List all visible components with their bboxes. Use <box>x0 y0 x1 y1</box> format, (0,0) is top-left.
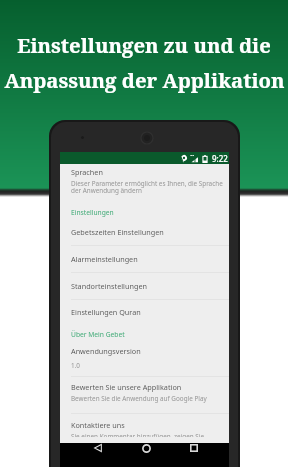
button[interactable]: Standorteinstellungen <box>60 273 229 300</box>
button[interactable]: Sprachen <box>60 167 229 195</box>
staticText: Bewerten Sie die Anwendung auf Google Pl… <box>71 394 207 403</box>
staticText: Anwendungsversion <box>71 346 141 356</box>
staticText: Anpassung der Applikation <box>4 66 285 94</box>
button[interactable]: Einstellungen Quran <box>60 300 229 324</box>
button[interactable]: Anwendungsversion <box>60 341 229 377</box>
button[interactable]: Home <box>138 440 154 456</box>
button[interactable]: Kontaktiere uns <box>60 414 229 443</box>
staticText: Sie einen Kommentar hinzufügen, zeigen S… <box>71 432 205 437</box>
staticText: 1.0 <box>71 361 80 370</box>
staticText: Bewerten Sie unsere Applikation <box>71 382 182 392</box>
staticText: 9:22 <box>212 153 228 164</box>
staticText: Einstellungen zu und die <box>17 31 271 59</box>
button[interactable]: Recent apps <box>186 440 202 456</box>
staticText: Über Mein Gebet <box>71 330 125 339</box>
staticText: Sprachen <box>71 167 103 177</box>
staticText: Einstellungen <box>71 208 114 217</box>
button[interactable]: Back <box>90 440 106 456</box>
button[interactable]: Alarmeinstellungen <box>60 246 229 273</box>
button[interactable]: Gebetszeiten Einstellungen <box>60 219 229 246</box>
staticText: Standorteinstellungen <box>71 281 147 291</box>
button[interactable]: Bewerten Sie unsere Applikation <box>60 377 229 414</box>
staticText: Einstellungen Quran <box>71 307 141 317</box>
staticText: Dieser Parameter ermöglicht es Ihnen, di… <box>71 179 223 195</box>
staticText: Alarmeinstellungen <box>71 254 138 264</box>
staticText: Gebetszeiten Einstellungen <box>71 227 164 237</box>
staticText: Kontaktiere uns <box>71 420 125 430</box>
